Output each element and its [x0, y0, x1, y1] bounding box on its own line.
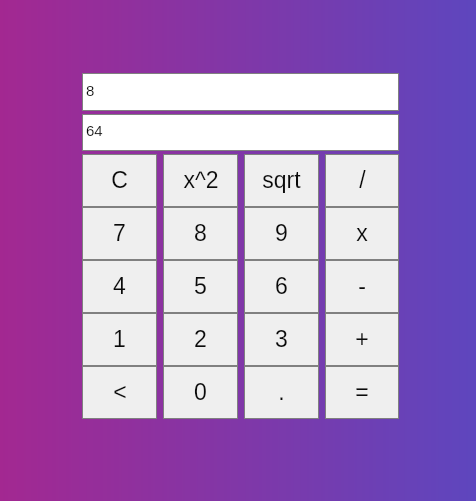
button[interactable]: 3 [244, 313, 319, 366]
staticText: x^2 [183, 167, 219, 193]
button[interactable]: Decimal point [244, 366, 319, 419]
button[interactable]: 64 [82, 114, 399, 151]
button[interactable]: Equals [325, 366, 399, 419]
button[interactable]: 4 [82, 260, 157, 313]
button[interactable]: 1 [82, 313, 157, 366]
button[interactable]: 0 [163, 366, 238, 419]
button[interactable]: Subtract [325, 260, 399, 313]
button[interactable]: 8 [82, 73, 399, 111]
staticText: sqrt [262, 167, 301, 193]
staticText: + [355, 326, 369, 352]
button[interactable]: 8 [163, 207, 238, 260]
button[interactable]: Backspace [82, 366, 157, 419]
button[interactable]: Divide [325, 154, 399, 207]
staticText: 8 [86, 82, 95, 99]
staticText: 4 [113, 273, 126, 299]
staticText: 9 [275, 220, 288, 246]
staticText: x [356, 220, 368, 246]
staticText: 7 [113, 220, 126, 246]
button[interactable]: Clear [82, 154, 157, 207]
staticText: 64 [86, 122, 103, 139]
staticText: C [111, 167, 128, 193]
staticText: 3 [275, 326, 288, 352]
staticText: . [278, 379, 285, 405]
staticText: = [355, 379, 369, 405]
staticText: 0 [194, 379, 207, 405]
staticText: 1 [113, 326, 126, 352]
staticText: / [359, 167, 366, 193]
staticText: 6 [275, 273, 288, 299]
staticText: 5 [194, 273, 207, 299]
button[interactable]: 2 [163, 313, 238, 366]
button[interactable]: Square [163, 154, 238, 207]
staticText: - [358, 273, 366, 299]
button[interactable]: Add [325, 313, 399, 366]
button[interactable]: Multiply [325, 207, 399, 260]
button[interactable]: 5 [163, 260, 238, 313]
button[interactable]: 6 [244, 260, 319, 313]
button[interactable]: 9 [244, 207, 319, 260]
staticText: < [113, 379, 127, 405]
button[interactable]: 7 [82, 207, 157, 260]
staticText: 8 [194, 220, 207, 246]
staticText: 2 [194, 326, 207, 352]
button[interactable]: Square root [244, 154, 319, 207]
